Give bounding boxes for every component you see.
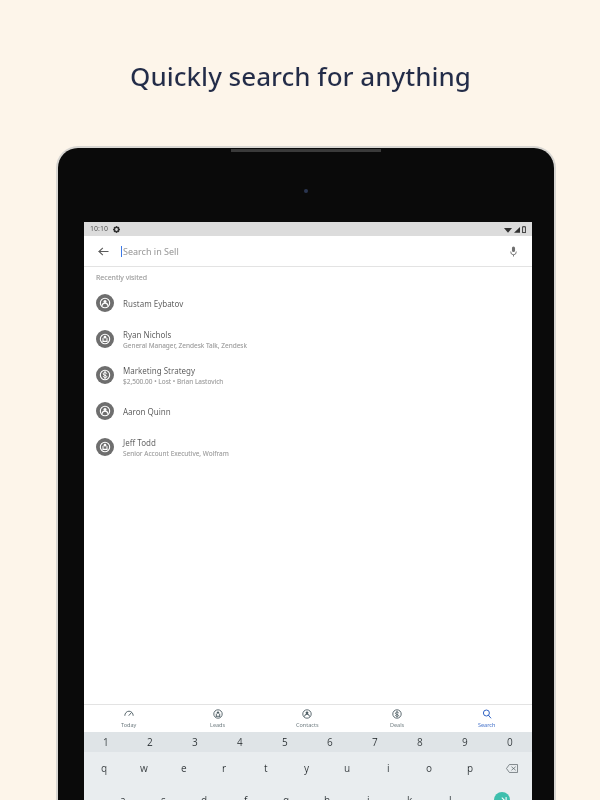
staticText: p [467,761,474,775]
staticText: s [161,793,166,800]
button[interactable]: Leads [173,705,262,732]
staticText: u [344,761,351,775]
staticText: General Manager, Zendesk Talk, Zendesk [123,341,247,350]
staticText: k [407,793,413,800]
staticText: 3 [192,735,198,749]
staticText: e [181,761,187,775]
staticText: Quickly search for anything [130,58,471,93]
button[interactable]: Search in Sell [123,245,503,257]
button[interactable]: 8 [397,732,442,752]
button[interactable]: 2 [128,732,172,752]
staticText: Marketing Strategy [123,365,196,376]
staticText: r [222,761,227,775]
staticText: l [449,793,452,800]
staticText: j [367,793,370,800]
staticText: t [264,761,268,775]
button[interactable]: t [245,752,286,784]
button[interactable]: u [327,752,368,784]
button[interactable]: q [84,752,124,784]
button[interactable]: Marketing Strategy [84,357,532,393]
button[interactable]: y [286,752,327,784]
staticText: 0 [507,735,513,749]
staticText: Search in Sell [123,245,179,257]
button[interactable]: Back [93,241,113,261]
staticText: q [101,761,108,775]
button[interactable]: h [307,784,348,800]
staticText: g [283,793,290,800]
button[interactable]: 3 [172,732,217,752]
button[interactable]: Voice search [503,241,523,261]
staticText: 7 [372,735,378,749]
staticText: h [324,793,331,800]
staticText: w [140,761,148,775]
button[interactable]: d [184,784,225,800]
button[interactable]: Rustam Eybatov [84,285,532,321]
button[interactable]: i [368,752,409,784]
staticText: o [426,761,433,775]
button[interactable]: r [204,752,245,784]
staticText: 8 [417,735,423,749]
staticText: f [244,793,248,800]
button[interactable]: Ryan Nichols [84,321,532,357]
button[interactable]: e [164,752,204,784]
staticText: Rustam Eybatov [123,298,184,309]
staticText: 6 [327,735,333,749]
button[interactable]: 5 [262,732,307,752]
staticText: i [387,761,390,775]
button[interactable]: s [143,784,184,800]
staticText: y [304,761,310,775]
staticText: Ryan Nichols [123,329,172,340]
button[interactable]: 1 [84,732,128,752]
button[interactable]: Backspace [491,752,532,784]
button[interactable]: Aaron Quinn [84,393,532,429]
staticText: 5 [282,735,288,749]
button[interactable]: w [124,752,164,784]
staticText: Senior Account Executive, Wolfram [123,449,229,458]
button[interactable]: k [389,784,430,800]
staticText: $2,500.00 • Lost • Brian Lastovich [123,377,224,386]
button[interactable]: j [348,784,389,800]
staticText: Contacts [296,721,319,728]
staticText: 1 [103,735,109,749]
button[interactable]: o [409,752,450,784]
button[interactable]: Enter [471,784,532,800]
staticText: Deals [390,721,405,728]
button[interactable]: l [430,784,471,800]
staticText: 2 [147,735,153,749]
button[interactable]: 6 [307,732,352,752]
button[interactable]: g [266,784,307,800]
button[interactable]: 4 [217,732,262,752]
staticText: a [120,793,126,800]
staticText: Recently visited [96,273,147,283]
button[interactable]: Deals [352,705,442,732]
button[interactable]: a [103,784,143,800]
button[interactable]: Today [84,705,173,732]
staticText: 4 [237,735,243,749]
staticText: Search [478,721,496,728]
staticText: Leads [210,721,226,728]
staticText: 9 [462,735,468,749]
button[interactable]: Jeff Todd [84,429,532,465]
staticText: Today [121,721,137,728]
staticText: d [201,793,208,800]
staticText: 10:10 [90,224,108,234]
button[interactable]: 0 [487,732,532,752]
button[interactable]: Contacts [262,705,352,732]
button[interactable]: 9 [442,732,487,752]
button[interactable]: Search [442,705,532,732]
staticText: Jeff Todd [123,437,156,448]
button[interactable]: f [225,784,266,800]
button[interactable]: 7 [352,732,397,752]
staticText: Aaron Quinn [123,406,171,417]
button[interactable]: p [450,752,491,784]
